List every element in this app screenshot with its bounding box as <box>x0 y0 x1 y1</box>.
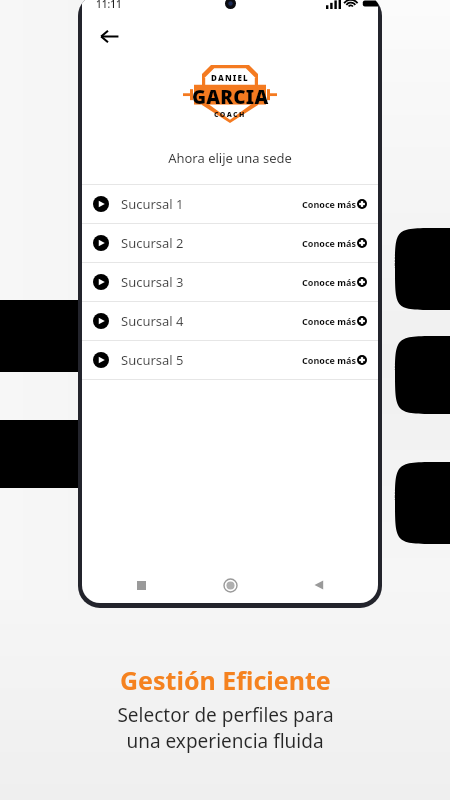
staticText: Sucursal 5 <box>121 351 184 369</box>
staticText: Conoce más <box>302 354 356 366</box>
staticText: 11:11 <box>96 0 122 11</box>
button[interactable]: Sucursal 4 <box>82 302 378 340</box>
staticText: Sucursal 2 <box>121 234 184 252</box>
button[interactable]: Back <box>92 19 126 53</box>
staticText: Conoce más <box>302 276 356 288</box>
staticText: Conoce más <box>302 198 356 210</box>
staticText: Sucursal 3 <box>121 273 184 291</box>
staticText: Sucursal 1 <box>121 195 184 213</box>
staticText: Gestión Eficiente <box>120 663 331 697</box>
button[interactable]: Sucursal 1 <box>82 185 378 223</box>
staticText: COACH <box>214 110 246 120</box>
button[interactable]: Sucursal 2 <box>82 224 378 262</box>
button[interactable]: Home <box>217 572 243 598</box>
staticText: Sucursal 4 <box>121 312 184 330</box>
staticText: Conoce más <box>302 237 356 249</box>
button[interactable]: Recents <box>128 572 154 598</box>
button[interactable]: Back <box>306 572 332 598</box>
staticText: una experiencia fluida <box>126 728 324 754</box>
button[interactable]: Sucursal 3 <box>82 263 378 301</box>
staticText: DANIEL <box>211 72 249 83</box>
button[interactable]: Sucursal 5 <box>82 341 378 379</box>
staticText: Ahora elije una sede <box>82 149 378 167</box>
staticText: Selector de perfiles para <box>117 702 334 728</box>
staticText: GARCIA <box>192 84 269 110</box>
staticText: Conoce más <box>302 315 356 327</box>
